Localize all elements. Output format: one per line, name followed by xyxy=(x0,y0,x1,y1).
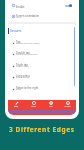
button[interactable]: Triple tap xyxy=(8,60,76,72)
staticText: Power dialog xyxy=(16,76,30,79)
staticText: Back xyxy=(16,88,21,91)
staticText: Triple tap xyxy=(16,63,28,67)
staticText: Tap xyxy=(16,40,21,44)
button[interactable]: Style xyxy=(25,100,42,115)
staticText: Long press xyxy=(16,74,30,78)
staticText: Edit xyxy=(14,105,19,108)
button[interactable]: Tap xyxy=(8,37,76,49)
staticText: Select action xyxy=(16,65,29,68)
button[interactable]: Enable xyxy=(8,0,76,11)
button[interactable]: Edit xyxy=(8,100,25,115)
button[interactable]: Screen orientation xyxy=(8,11,76,22)
staticText: Enable xyxy=(16,5,25,9)
staticText: Swipe to the right xyxy=(16,86,39,90)
staticText: Double tap xyxy=(16,51,30,55)
staticText: About xyxy=(64,105,71,108)
staticText: Auto xyxy=(16,16,21,19)
button[interactable]: Swipe to the right xyxy=(8,83,76,95)
button[interactable]: Enable toggle xyxy=(65,3,72,8)
button[interactable]: About xyxy=(59,100,76,115)
staticText: Screen orientation xyxy=(16,14,40,18)
button[interactable]: Double tap xyxy=(8,48,76,60)
staticText: Pro xyxy=(49,105,53,108)
staticText: 3 Different Edges xyxy=(9,125,75,134)
staticText: Disable and lock screen xyxy=(16,42,40,45)
staticText: Style xyxy=(31,105,37,108)
button[interactable]: Long press xyxy=(8,71,76,83)
staticText: Disable for 5 seconds xyxy=(16,53,38,56)
staticText: Gestures xyxy=(10,29,22,33)
button[interactable]: Pro xyxy=(42,100,59,115)
